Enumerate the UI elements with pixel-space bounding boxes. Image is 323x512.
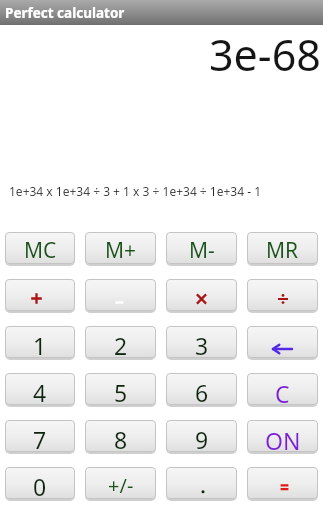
staticText: 3 bbox=[195, 330, 209, 358]
button[interactable] bbox=[5, 279, 75, 311]
button[interactable]: ON bbox=[247, 420, 318, 452]
button[interactable]: M+ bbox=[85, 232, 156, 264]
button[interactable]: C bbox=[247, 373, 318, 405]
button[interactable]: 4 bbox=[5, 373, 75, 405]
button[interactable]: 9 bbox=[166, 420, 237, 452]
staticText: M- bbox=[189, 236, 215, 264]
staticText: 0 bbox=[33, 471, 47, 499]
staticText: C bbox=[275, 378, 290, 405]
button[interactable]: 8 bbox=[85, 420, 156, 452]
button[interactable]: 1 bbox=[5, 326, 75, 358]
staticText: 7 bbox=[33, 424, 47, 452]
button[interactable] bbox=[247, 467, 318, 499]
button[interactable]: 6 bbox=[166, 373, 237, 405]
button[interactable]: MC bbox=[5, 232, 75, 264]
staticText: ON bbox=[265, 425, 301, 452]
button[interactable]: 0 bbox=[5, 467, 75, 499]
staticText: 6 bbox=[195, 377, 209, 405]
button[interactable]: 2 bbox=[85, 326, 156, 358]
button[interactable]: 5 bbox=[85, 373, 156, 405]
staticText: 5 bbox=[114, 377, 128, 405]
staticText: 4 bbox=[33, 377, 47, 405]
staticText: 1 bbox=[33, 330, 47, 358]
button[interactable]: +/- bbox=[85, 467, 156, 499]
button[interactable] bbox=[85, 279, 156, 311]
button[interactable] bbox=[247, 326, 318, 358]
staticText: 9 bbox=[195, 424, 209, 452]
staticText: M+ bbox=[105, 236, 137, 264]
staticText: 8 bbox=[114, 424, 128, 452]
button[interactable]: 7 bbox=[5, 420, 75, 452]
button[interactable] bbox=[166, 279, 237, 311]
button[interactable] bbox=[247, 279, 318, 311]
staticText: MR bbox=[266, 236, 299, 264]
button[interactable]: MR bbox=[247, 232, 318, 264]
staticText: 1e+34 x 1e+34 ÷ 3 + 1 x 3 ÷ 1e+34 ÷ 1e+3… bbox=[9, 183, 262, 199]
button[interactable]: 3 bbox=[166, 326, 237, 358]
button[interactable]: M- bbox=[166, 232, 237, 264]
staticText: 2 bbox=[114, 330, 128, 358]
staticText: +/- bbox=[108, 472, 134, 499]
staticText: Perfect calculator bbox=[5, 4, 125, 22]
staticText: MC bbox=[24, 236, 57, 264]
staticText: 3e-68 bbox=[209, 25, 321, 84]
button[interactable] bbox=[166, 467, 237, 499]
